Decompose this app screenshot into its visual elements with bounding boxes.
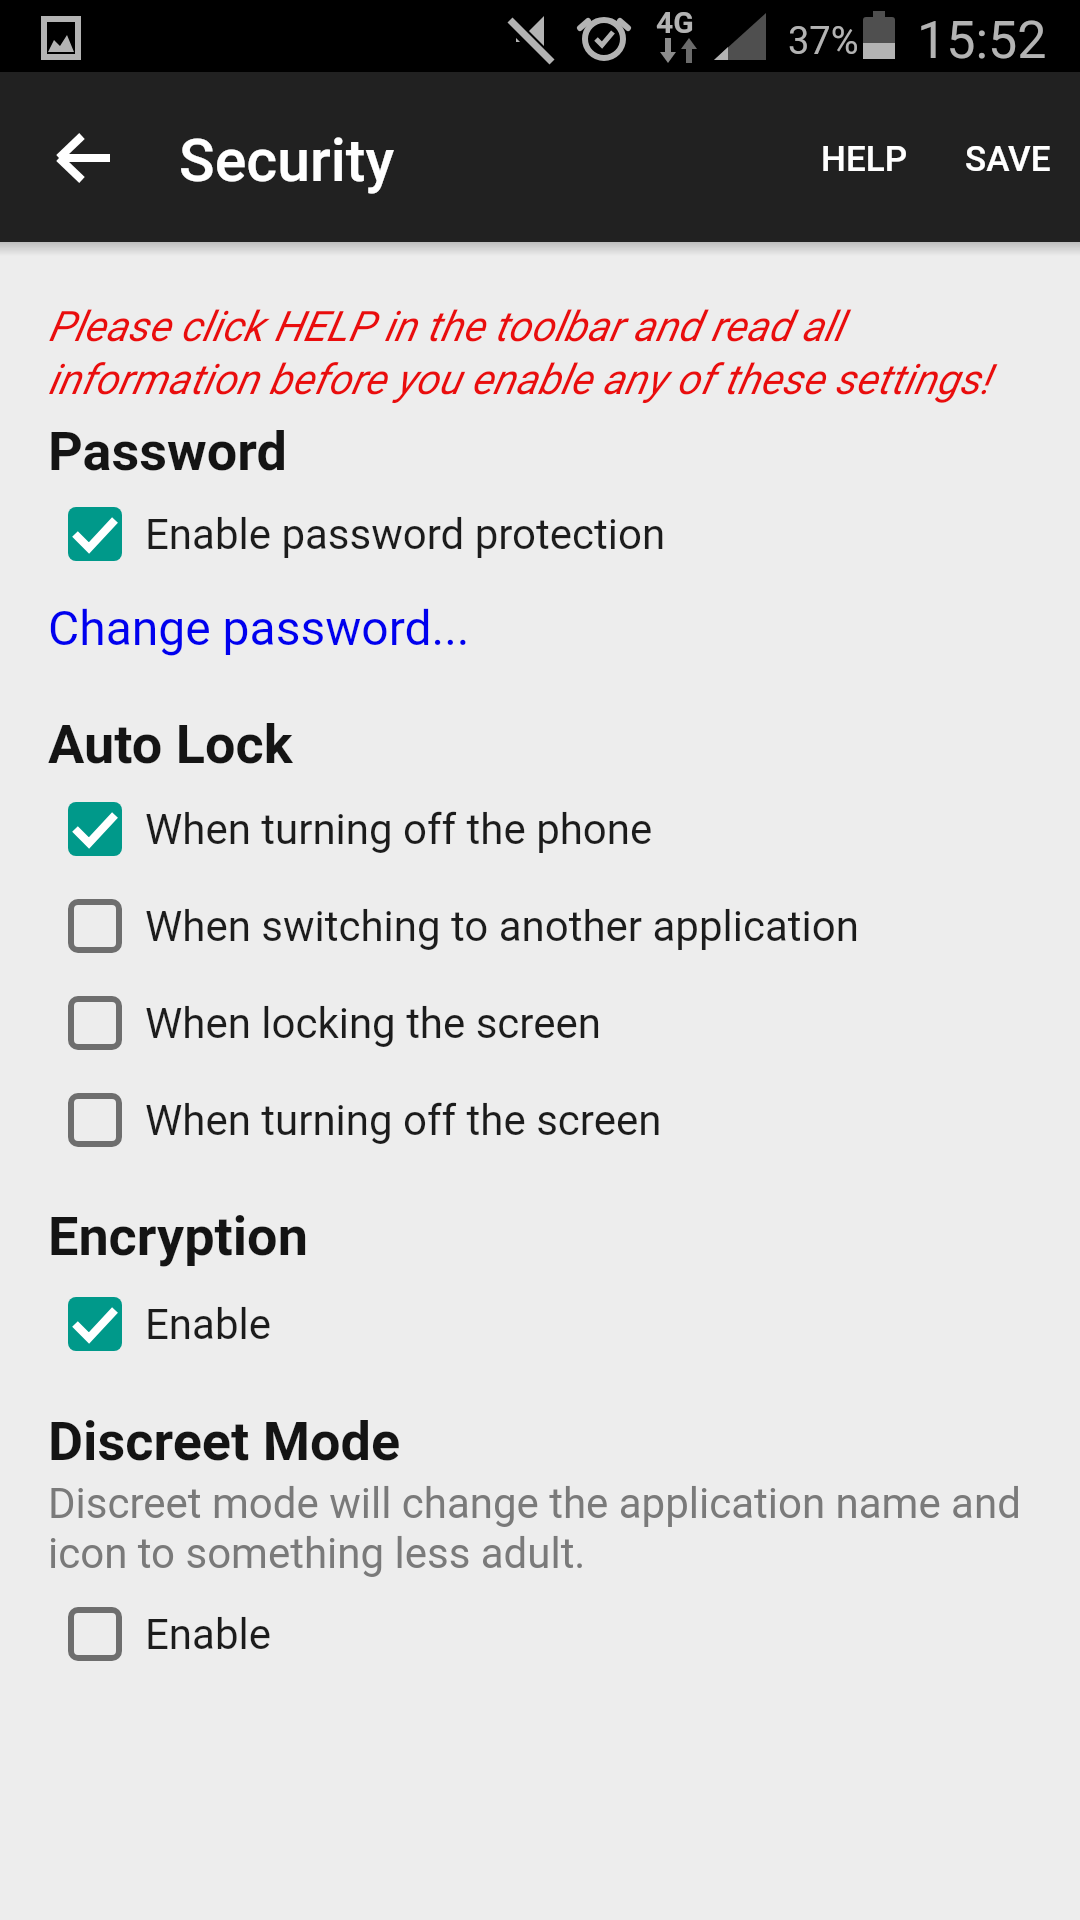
staticText: Discreet mode will change the applicatio…	[48, 1479, 1021, 1528]
button[interactable]: Enable password protection	[68, 507, 666, 561]
button[interactable]: Change password...	[0, 0, 422, 56]
staticText: Please click HELP in the toolbar and rea…	[48, 302, 844, 351]
button[interactable]: Enable	[68, 1297, 271, 1351]
button[interactable]: When turning off the phone	[68, 802, 653, 856]
staticText: 37%	[788, 19, 859, 64]
staticText: Auto Lock	[48, 713, 293, 776]
staticText: Encryption	[48, 1205, 308, 1268]
staticText: When turning off the phone	[145, 805, 653, 854]
staticText: Password	[48, 420, 287, 483]
staticText: 4G	[656, 5, 694, 40]
button[interactable]: Enable	[68, 1607, 271, 1661]
staticText: When switching to another application	[145, 902, 859, 951]
button[interactable]: When turning off the screen	[68, 1093, 662, 1147]
staticText: Enable password protection	[145, 510, 666, 559]
staticText: Enable	[145, 1610, 271, 1659]
staticText: icon to something less adult.	[48, 1529, 586, 1578]
staticText: When turning off the screen	[145, 1096, 662, 1145]
staticText: Security	[179, 126, 395, 195]
staticText: 15:52	[917, 10, 1047, 71]
staticText: Discreet Mode	[48, 1410, 401, 1473]
button[interactable]: When locking the screen	[68, 996, 601, 1050]
staticText: information before you enable any of the…	[48, 355, 991, 404]
staticText: When locking the screen	[145, 999, 601, 1048]
staticText: Enable	[145, 1300, 271, 1349]
button[interactable]	[40, 118, 130, 198]
button[interactable]: When switching to another application	[68, 899, 859, 953]
